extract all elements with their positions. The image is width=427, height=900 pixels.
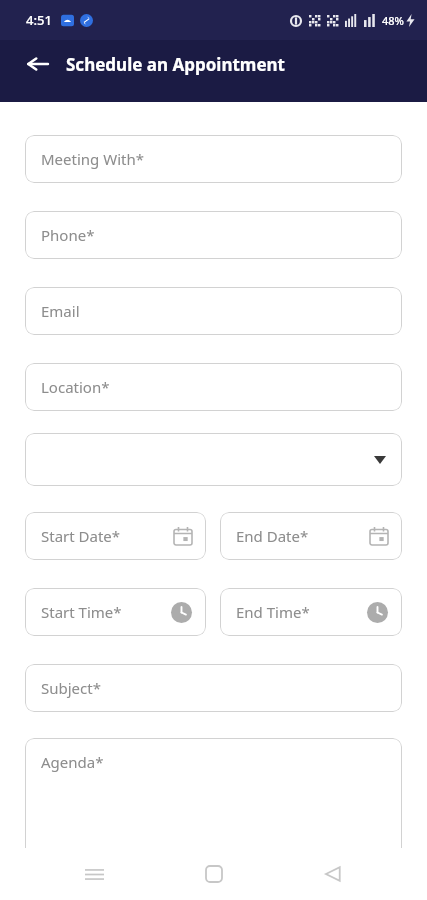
- staticText: Location*: [41, 377, 110, 397]
- button[interactable]: Start Date*: [25, 512, 206, 560]
- button[interactable]: End Time*: [220, 588, 402, 636]
- staticText: Email: [41, 301, 80, 321]
- staticText: 4:51: [26, 11, 52, 29]
- button[interactable]: Select option: [25, 433, 402, 486]
- button[interactable]: End Date*: [220, 512, 402, 560]
- staticText: Schedule an Appointment: [66, 53, 285, 76]
- button[interactable]: Back: [14, 40, 62, 88]
- staticText: End Time*: [236, 602, 310, 622]
- button[interactable]: Start Time*: [25, 588, 206, 636]
- staticText: End Date*: [236, 526, 309, 546]
- button[interactable]: Back: [307, 848, 359, 900]
- button[interactable]: Home: [188, 848, 240, 900]
- button[interactable]: Agenda*: [25, 738, 402, 888]
- staticText: Meeting With*: [41, 149, 144, 169]
- button[interactable]: Email: [25, 287, 402, 335]
- button[interactable]: Location*: [25, 363, 402, 411]
- button[interactable]: Meeting With*: [25, 135, 402, 183]
- button[interactable]: Phone*: [25, 211, 402, 259]
- staticText: Start Date*: [41, 526, 121, 546]
- staticText: Phone*: [41, 225, 95, 245]
- button[interactable]: Recent apps: [68, 848, 120, 900]
- staticText: 48%: [382, 13, 404, 28]
- button[interactable]: Subject*: [25, 664, 402, 712]
- staticText: Start Time*: [41, 602, 122, 622]
- staticText: Agenda*: [41, 752, 104, 772]
- staticText: Subject*: [41, 678, 101, 698]
